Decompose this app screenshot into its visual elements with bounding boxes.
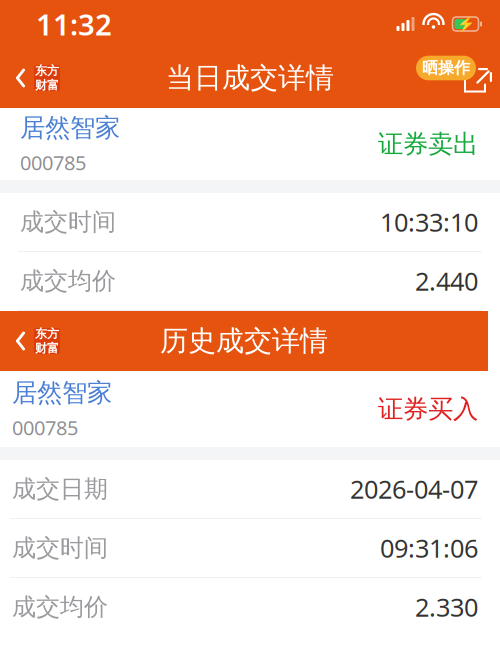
staticText: 000785: [20, 149, 86, 176]
staticText: ⚡: [456, 16, 474, 32]
staticText: 历史成交详情: [160, 324, 328, 358]
staticText: 财富: [35, 341, 59, 356]
staticText: 证券卖出: [378, 128, 478, 159]
staticText: 东方: [35, 326, 59, 341]
button[interactable]: 返回 东方财富: [0, 311, 74, 371]
staticText: 晒操作: [422, 58, 470, 78]
staticText: 当日成交详情: [166, 61, 334, 95]
button[interactable]: 分享 晒操作: [416, 48, 500, 108]
staticText: 11:32: [36, 4, 112, 43]
staticText: 09:31:06: [380, 531, 478, 565]
staticText: 成交均价: [20, 266, 116, 296]
staticText: 证券买入: [378, 393, 478, 424]
staticText: 10:33:10: [380, 205, 478, 239]
staticText: 东方: [35, 63, 59, 78]
staticText: 财富: [35, 78, 59, 93]
staticText: 成交时间: [12, 533, 108, 563]
staticText: 000785: [12, 414, 78, 441]
button[interactable]: 居然智家: [0, 371, 500, 447]
staticText: 成交日期: [12, 474, 108, 504]
staticText: 居然智家: [20, 112, 120, 143]
staticText: 成交均价: [12, 592, 108, 622]
staticText: 成交时间: [20, 207, 116, 237]
staticText: 2.330: [415, 590, 478, 624]
staticText: 2.440: [415, 264, 478, 298]
staticText: 2026-04-07: [350, 472, 478, 506]
button[interactable]: 居然智家: [0, 108, 500, 180]
button[interactable]: 返回 东方财富: [0, 48, 74, 108]
staticText: 居然智家: [12, 377, 112, 408]
